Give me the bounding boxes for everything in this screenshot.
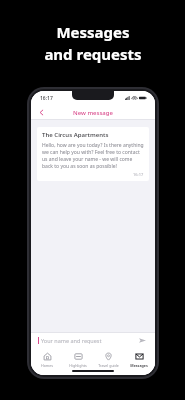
- staticText: Messages: [56, 22, 130, 42]
- staticText: Homes: [41, 363, 53, 368]
- button[interactable]: Homes: [32, 351, 62, 369]
- button[interactable]: The Circus Apartments: [37, 127, 149, 181]
- button[interactable]: Travel guide: [93, 351, 123, 369]
- staticText: New message: [73, 109, 113, 117]
- staticText: The Circus Apartments: [42, 131, 109, 139]
- staticText: Highlights: [69, 363, 87, 368]
- staticText: 16:17: [133, 172, 144, 177]
- staticText: and requests: [44, 44, 142, 64]
- staticText: Your name and request: [41, 337, 137, 344]
- button[interactable]: Highlights: [63, 351, 93, 369]
- button[interactable]: Messages: [124, 351, 154, 369]
- button[interactable]: Back: [35, 106, 48, 119]
- button[interactable]: Send: [137, 335, 148, 346]
- staticText: Hello, how are you today? Is there anyth…: [42, 142, 144, 170]
- staticText: Travel guide: [98, 363, 119, 368]
- staticText: Messages: [130, 363, 148, 368]
- button[interactable]: Your name and request: [38, 332, 148, 349]
- staticText: 16:17: [40, 95, 53, 102]
